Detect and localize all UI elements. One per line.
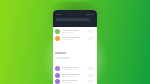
button[interactable]: Open (53, 79, 97, 84)
button[interactable]: Open (53, 65, 97, 72)
button[interactable]: Open (53, 35, 97, 42)
button[interactable]: Open (53, 72, 97, 79)
button[interactable]: Open (53, 28, 97, 35)
